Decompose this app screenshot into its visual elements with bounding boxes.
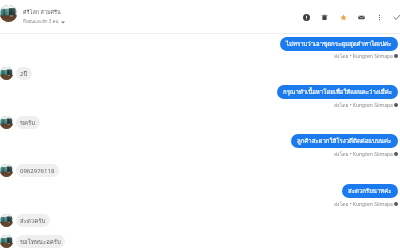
button[interactable]: Delete — [315, 8, 333, 26]
staticText: ส่งโดย • Kungten Siimapa — [334, 150, 393, 158]
button[interactable]: Mark as unread — [352, 8, 370, 26]
staticText: ส่งโดย • Kungten Siimapa — [334, 200, 393, 208]
staticText: ส่งโดย • Kungten Siimapa — [334, 52, 393, 60]
button[interactable]: Report spam — [297, 8, 315, 26]
staticText: 2ปี — [20, 69, 28, 79]
button[interactable]: ขครับ — [16, 116, 40, 129]
button[interactable]: ไม่ทราบว่าเอาชุดกระดุมสุดคำทาไดเปค่ะ — [280, 37, 398, 51]
button[interactable]: Star — [334, 8, 352, 26]
button[interactable]: สะดวกรับนาทค่ะ — [342, 184, 398, 198]
staticText: กรุณาทำเนื้อหาโดยเพื่อให้แผนคะว่างเมื่ค่… — [283, 87, 392, 97]
staticText: ส่งโดย • Kungten Siimapa — [334, 101, 393, 109]
staticText: 0962976118 — [20, 167, 55, 175]
staticText: ถึงฉันและอีก 3 คน — [23, 18, 59, 25]
staticText: ขครับ — [20, 118, 36, 128]
button[interactable]: ลูกค้าสะดวกให้โรงวดีติดต่อแบบนค่ะ — [291, 134, 398, 148]
button[interactable]: More options — [370, 8, 388, 26]
button[interactable]: ขอโทษนะอครับ — [16, 235, 65, 248]
button[interactable]: สะดวครับ — [16, 214, 50, 227]
button[interactable]: กรุณาทำเนื้อหาโดยเพื่อให้แผนคะว่างเมื่ค่… — [277, 85, 398, 99]
staticText: สะดวกรับนาทค่ะ — [348, 186, 392, 196]
staticText: ลูกค้าสะดวกให้โรงวดีติดต่อแบบนค่ะ — [297, 136, 392, 146]
button[interactable]: Done — [388, 8, 400, 26]
staticText: สะดวครับ — [20, 216, 46, 226]
button[interactable]: 2ปี — [16, 67, 32, 80]
staticText: ขอโทษนะอครับ — [20, 237, 61, 247]
button[interactable]: 0962976118 — [16, 164, 59, 177]
staticText: ศรีโลก สามศรีน — [23, 8, 61, 17]
staticText: ไม่ทราบว่าเอาชุดกระดุมสุดคำทาไดเปค่ะ — [286, 39, 392, 49]
